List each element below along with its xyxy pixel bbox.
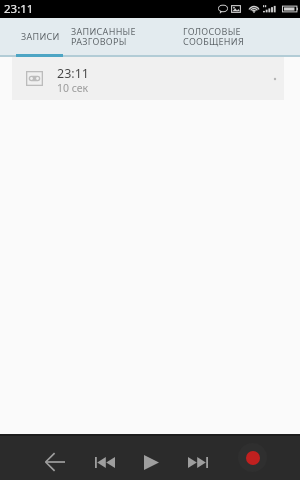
button[interactable]: More options bbox=[268, 72, 282, 86]
button[interactable]: ЗАПИСАННЫЕ РАЗГОВОРЫ bbox=[67, 18, 139, 54]
button[interactable]: Back bbox=[41, 448, 69, 476]
button[interactable]: Next bbox=[184, 448, 212, 476]
staticText: 23:11 bbox=[57, 65, 89, 82]
button[interactable]: Play bbox=[137, 448, 165, 476]
staticText: ЗАПИСАННЫЕ РАЗГОВОРЫ bbox=[71, 25, 136, 47]
staticText: ГОЛОСОВЫЕ СООБЩЕНИЯ bbox=[183, 25, 244, 47]
button[interactable]: ЗАПИСИ bbox=[17, 18, 64, 54]
staticText: 10 сек bbox=[57, 81, 89, 95]
button[interactable]: Previous bbox=[91, 448, 119, 476]
button[interactable]: 23:11 bbox=[12, 57, 284, 100]
staticText: 23:11 bbox=[4, 1, 34, 17]
button[interactable]: Record bbox=[238, 443, 267, 472]
button[interactable]: ГОЛОСОВЫЕ СООБЩЕНИЯ bbox=[178, 18, 249, 54]
staticText: ЗАПИСИ bbox=[21, 30, 60, 42]
